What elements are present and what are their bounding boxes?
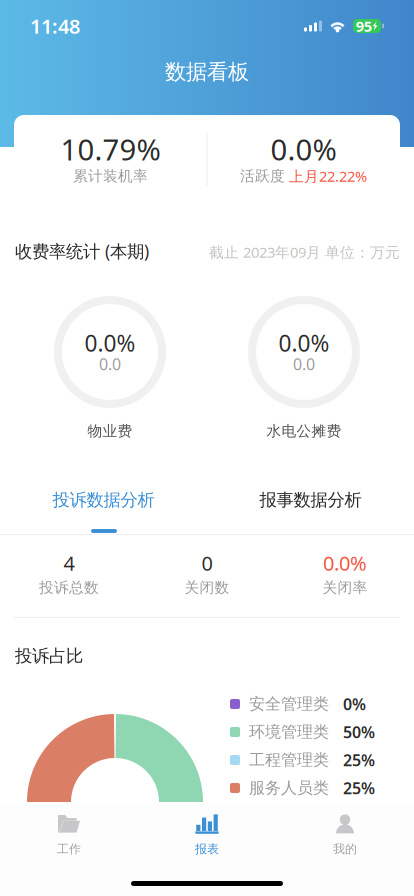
staticText: 95 [356, 16, 372, 36]
staticText: 报事数据分析 [259, 489, 361, 511]
staticText: 11:48 [30, 13, 80, 39]
staticText: 0% [343, 693, 366, 715]
staticText: 报表 [195, 842, 219, 856]
staticText: 50% [343, 721, 375, 743]
staticText: 0.0 [293, 353, 315, 375]
staticText: 累计装机率 [73, 167, 148, 185]
staticText: 投诉占比 [15, 645, 83, 667]
staticText: 4 [63, 550, 74, 576]
staticText: 投诉总数 [39, 578, 99, 596]
staticText: 收费率统计 (本期) [15, 239, 149, 262]
staticText: 0 [201, 550, 212, 576]
staticText: 0.0% [84, 328, 135, 358]
button[interactable]: 工作 [0, 802, 138, 896]
staticText: 10.79% [60, 129, 160, 168]
staticText: 25% [343, 749, 375, 771]
button[interactable]: 报表 [138, 802, 276, 896]
staticText: 投诉数据分析 [52, 489, 154, 511]
staticText: 0.0% [270, 129, 336, 168]
staticText: 关闭率 [322, 578, 367, 596]
staticText: 工作 [57, 842, 81, 856]
staticText: 关闭数 [184, 578, 229, 596]
staticText: 上月22.22% [289, 166, 367, 186]
staticText: 工程管理类 [249, 750, 329, 770]
staticText: 0.0% [323, 550, 367, 576]
staticText: 0.0% [278, 328, 329, 358]
staticText: 截止 2023年09月 单位：万元 [209, 242, 400, 262]
staticText: 安全管理类 [249, 694, 329, 714]
button[interactable]: 我的 [276, 802, 414, 896]
button[interactable]: 投诉数据分析 [0, 489, 207, 511]
staticText: 环境管理类 [249, 722, 329, 742]
staticText: 活跃度 [240, 167, 285, 185]
staticText: 我的 [333, 842, 357, 856]
staticText: 物业费 [87, 422, 132, 440]
staticText: 25% [343, 777, 375, 799]
button[interactable]: 报事数据分析 [207, 489, 414, 511]
staticText: 服务人员类 [249, 778, 329, 798]
staticText: 数据看板 [165, 59, 249, 85]
staticText: 水电公摊费 [266, 422, 341, 440]
staticText: 0.0 [99, 353, 121, 375]
